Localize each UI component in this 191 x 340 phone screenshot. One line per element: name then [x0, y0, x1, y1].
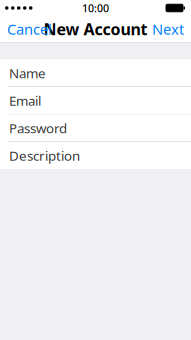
staticText: Description [9, 147, 80, 164]
button[interactable]: Email [0, 87, 191, 114]
staticText: 10:00 [82, 1, 109, 15]
button[interactable]: Name [0, 59, 191, 86]
staticText: Name [9, 64, 46, 82]
staticText: Email [9, 92, 41, 109]
staticText: Cancel [7, 19, 52, 39]
staticText: Password [9, 119, 67, 137]
button[interactable]: Password [0, 114, 191, 141]
button[interactable]: Cancel [0, 14, 59, 44]
button[interactable]: Description [0, 142, 191, 169]
staticText: Next [152, 19, 184, 39]
button[interactable]: Next [145, 14, 191, 44]
staticText: New Account [43, 18, 147, 40]
